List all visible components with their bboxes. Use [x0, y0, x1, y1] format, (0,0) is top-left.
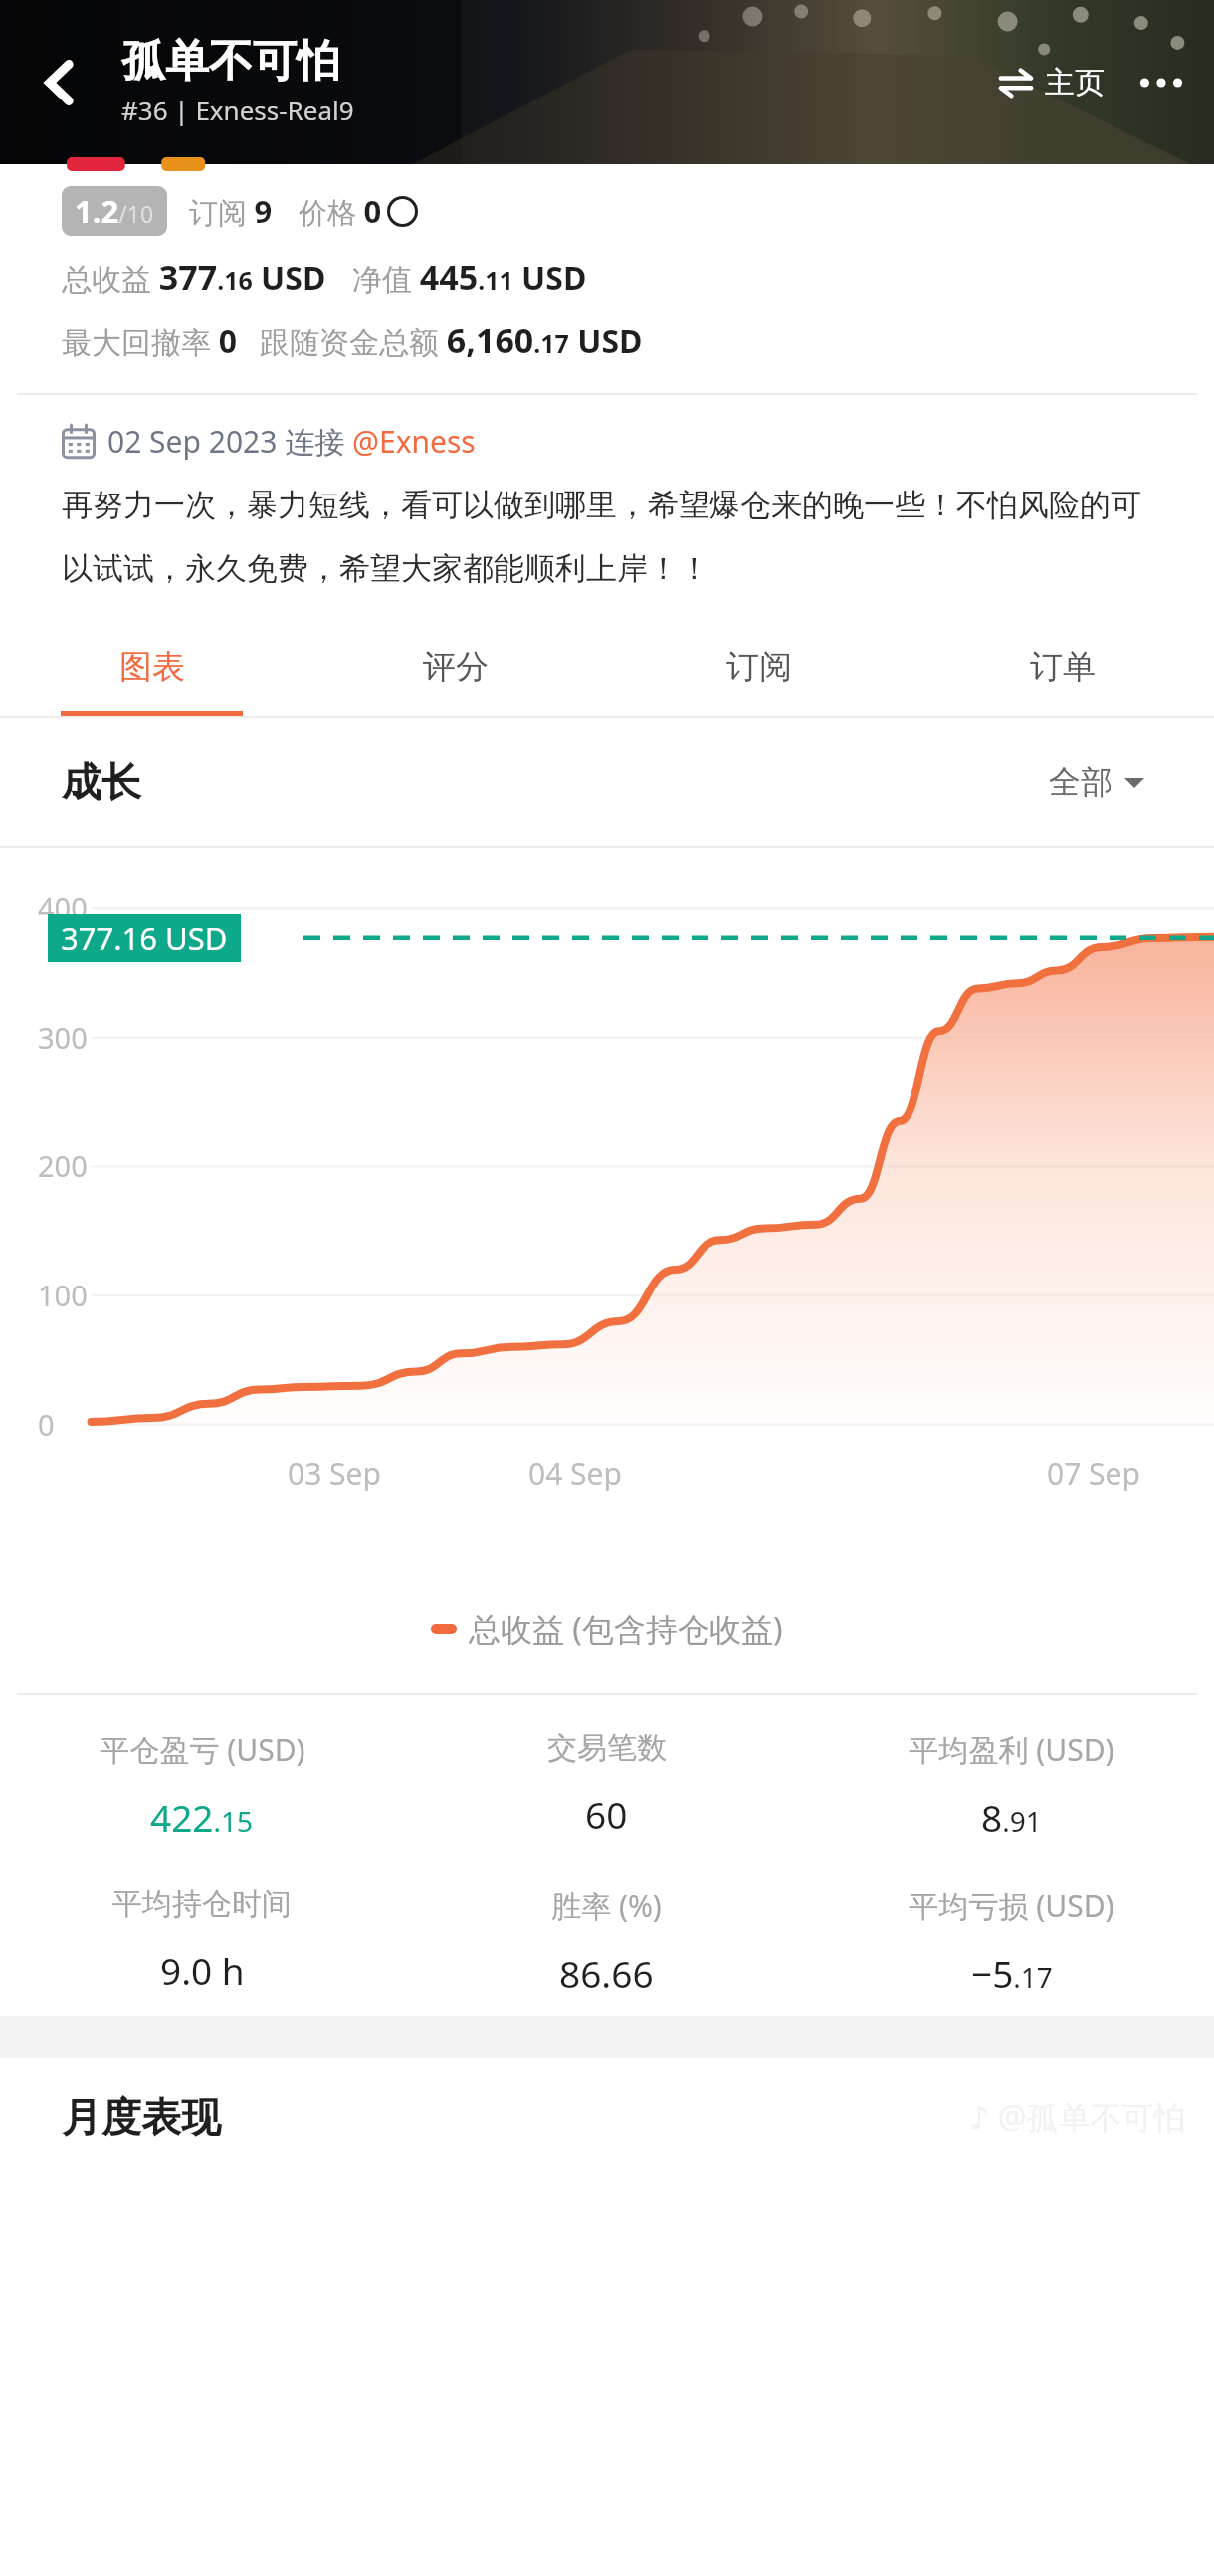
staticText: 200 — [38, 1146, 88, 1185]
staticText: 订阅 9 — [189, 190, 273, 232]
staticText: 04 Sep — [528, 1453, 622, 1493]
staticText: 最大回撤率 0 — [62, 319, 238, 363]
staticText: #36 | Exness-Real9 — [121, 93, 354, 127]
staticText: 跟随资金总额 6,160.17 USD — [260, 317, 643, 363]
staticText: 100 — [38, 1276, 88, 1314]
button[interactable]: @Exness — [352, 421, 476, 462]
staticText: 月度表现 — [62, 2092, 221, 2142]
staticText: 422.15 — [150, 1792, 254, 1842]
staticText: 图表 — [119, 646, 185, 688]
staticText: 9.0 h — [160, 1945, 245, 1995]
staticText: 交易笔数 — [547, 1729, 667, 1767]
staticText: 全部 — [1049, 762, 1113, 802]
staticText: 成长 — [62, 757, 141, 807]
staticText: 86.66 — [559, 1948, 654, 1998]
staticText: 60 — [585, 1789, 628, 1839]
staticText: 1.2/10 — [75, 190, 154, 232]
staticText: 平均亏损 (USD) — [909, 1885, 1114, 1926]
staticText: 300 — [38, 1018, 88, 1057]
staticText: 07 Sep — [1047, 1453, 1140, 1493]
button[interactable]: 订阅 — [607, 624, 910, 716]
staticText: ♪ @孤单不可怕 — [969, 2095, 1186, 2139]
staticText: 03 Sep — [288, 1453, 381, 1493]
staticText: 400 — [38, 889, 88, 927]
staticText: 主页 — [1045, 64, 1105, 101]
staticText: 评分 — [423, 646, 489, 688]
staticText: 净值 445.11 USD — [352, 254, 587, 299]
staticText: 平均持仓时间 — [112, 1885, 292, 1923]
staticText: 平均盈利 (USD) — [909, 1729, 1114, 1770]
staticText: 总收益 (包含持仓收益) — [469, 1607, 783, 1651]
staticText: 02 Sep 2023 连接 — [107, 421, 352, 462]
button[interactable]: 订单 — [910, 624, 1214, 716]
staticText: 价格 0 — [299, 190, 382, 232]
button[interactable]: 图表 — [0, 624, 303, 716]
staticText: 胜率 (%) — [551, 1885, 662, 1926]
staticText: 总收益 377.16 USD — [62, 254, 326, 299]
staticText: 订阅 — [726, 646, 792, 688]
button[interactable]: Back — [14, 37, 105, 128]
staticText: 订单 — [1030, 646, 1096, 688]
staticText: 孤单不可怕 — [121, 34, 340, 89]
staticText: 0 — [38, 1405, 55, 1444]
staticText: 8.91 — [981, 1792, 1042, 1842]
button[interactable]: 主页 — [991, 54, 1111, 111]
staticText: 再努力一次，暴力短线，看可以做到哪里，希望爆仓来的晚一些！不怕风险的可以试试，永… — [62, 486, 1156, 588]
staticText: −5.17 — [971, 1948, 1053, 1998]
staticText: 平仓盈亏 (USD) — [100, 1729, 305, 1770]
button[interactable]: 评分 — [303, 624, 607, 716]
staticText: 377.16 USD — [61, 917, 228, 959]
button[interactable]: More options — [1126, 48, 1196, 117]
button[interactable]: 全部 — [1041, 754, 1152, 810]
